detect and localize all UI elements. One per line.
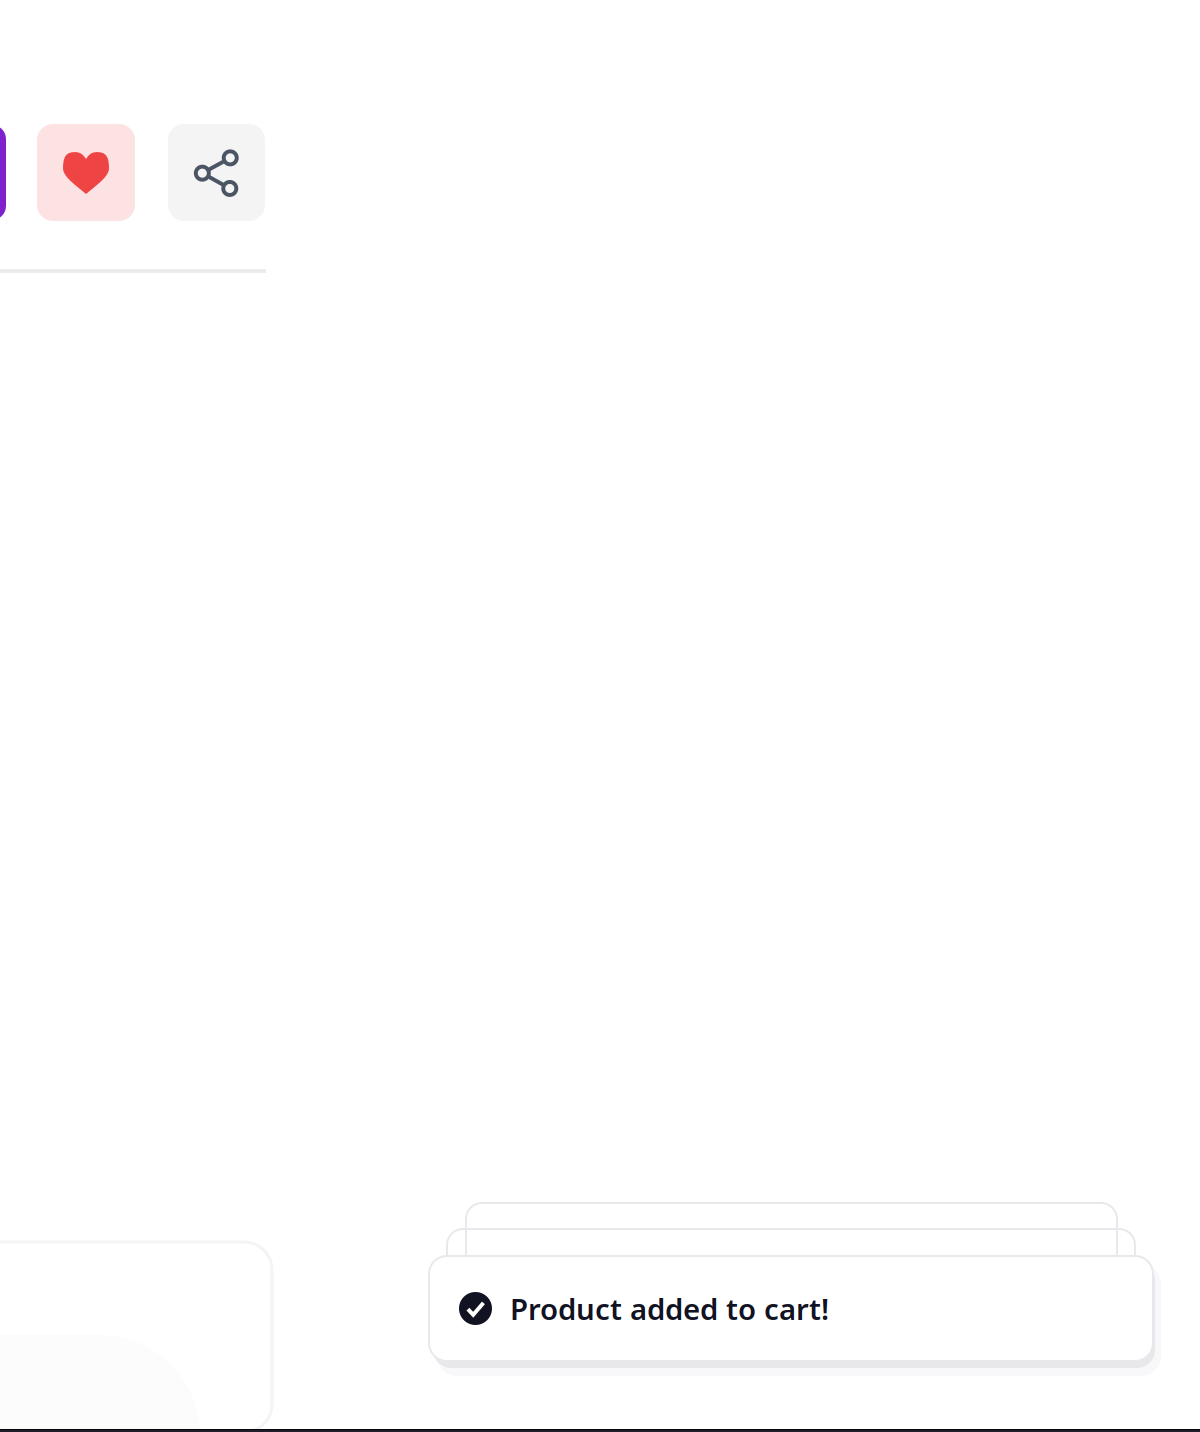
button[interactable]: Favourite <box>37 124 135 221</box>
button[interactable]: Share <box>168 124 265 221</box>
staticText: Product added to cart! <box>510 1289 829 1328</box>
button[interactable]: Product added to cart! <box>429 1256 1153 1361</box>
button[interactable]: Add to cart <box>0 125 6 220</box>
